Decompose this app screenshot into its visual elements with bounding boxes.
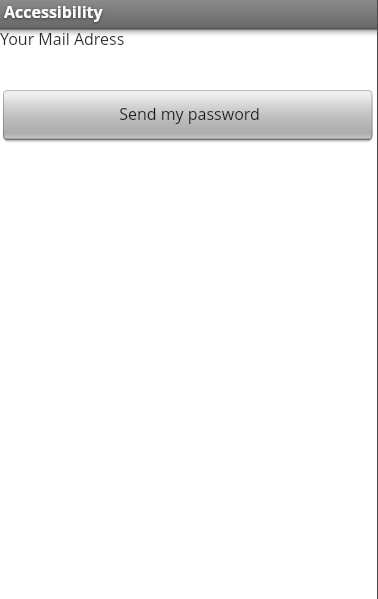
- staticText: Accessibility: [4, 1, 103, 23]
- staticText: Your Mail Adress: [0, 28, 125, 50]
- button[interactable]: Accessibility: [0, 0, 378, 38]
- staticText: Send my password: [119, 103, 260, 125]
- button[interactable]: Send my password: [0, 86, 378, 144]
